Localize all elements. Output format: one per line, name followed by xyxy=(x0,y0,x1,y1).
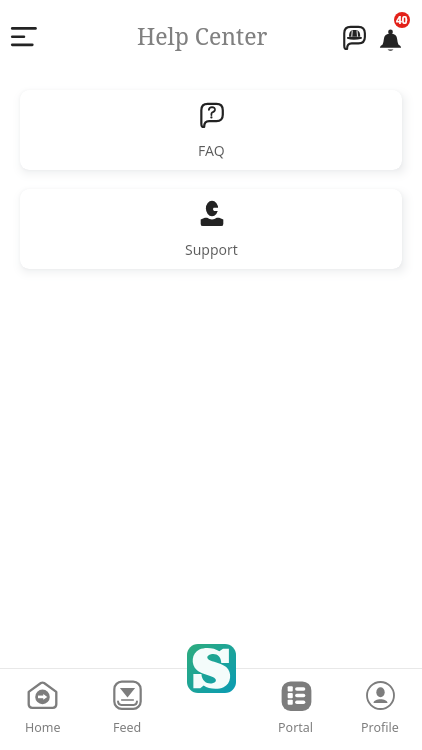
button[interactable]: Feed xyxy=(85,669,170,736)
staticText: Profile xyxy=(361,719,399,736)
button[interactable]: Menu xyxy=(2,15,46,59)
staticText: FAQ xyxy=(198,141,225,160)
staticText: Home xyxy=(25,719,61,736)
staticText: Feed xyxy=(113,719,142,736)
button[interactable]: Notifications xyxy=(374,12,418,56)
button[interactable]: Support xyxy=(20,189,402,269)
staticText: Support xyxy=(185,240,238,259)
button[interactable]: Portal xyxy=(254,669,338,736)
button[interactable]: FAQ xyxy=(20,90,402,170)
staticText: Portal xyxy=(278,719,314,736)
button[interactable]: Chat xyxy=(334,17,374,57)
button[interactable]: Home xyxy=(0,669,85,736)
button[interactable]: Profile xyxy=(338,669,422,736)
staticText: Help Center xyxy=(137,20,268,51)
staticText: 40 xyxy=(396,13,408,27)
button[interactable]: Snaptrude Home xyxy=(187,644,236,693)
